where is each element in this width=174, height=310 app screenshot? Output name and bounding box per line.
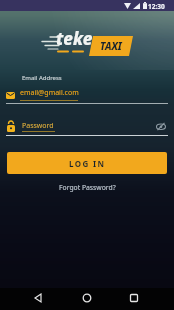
button[interactable]: LOG IN: [7, 152, 167, 174]
staticText: Password: [22, 121, 54, 131]
staticText: Forgot Password?: [59, 183, 116, 192]
button[interactable]: [126, 290, 142, 306]
staticText: email@gmail.com: [20, 88, 79, 98]
staticText: LOG IN: [69, 158, 106, 169]
button[interactable]: [79, 290, 95, 306]
staticText: Email Address: [22, 74, 62, 82]
staticText: TAXI: [100, 39, 122, 53]
button[interactable]: Forgot Password?: [57, 181, 118, 194]
staticText: 12:30: [148, 2, 165, 11]
staticText: teke: [56, 27, 93, 50]
button[interactable]: [30, 290, 46, 306]
